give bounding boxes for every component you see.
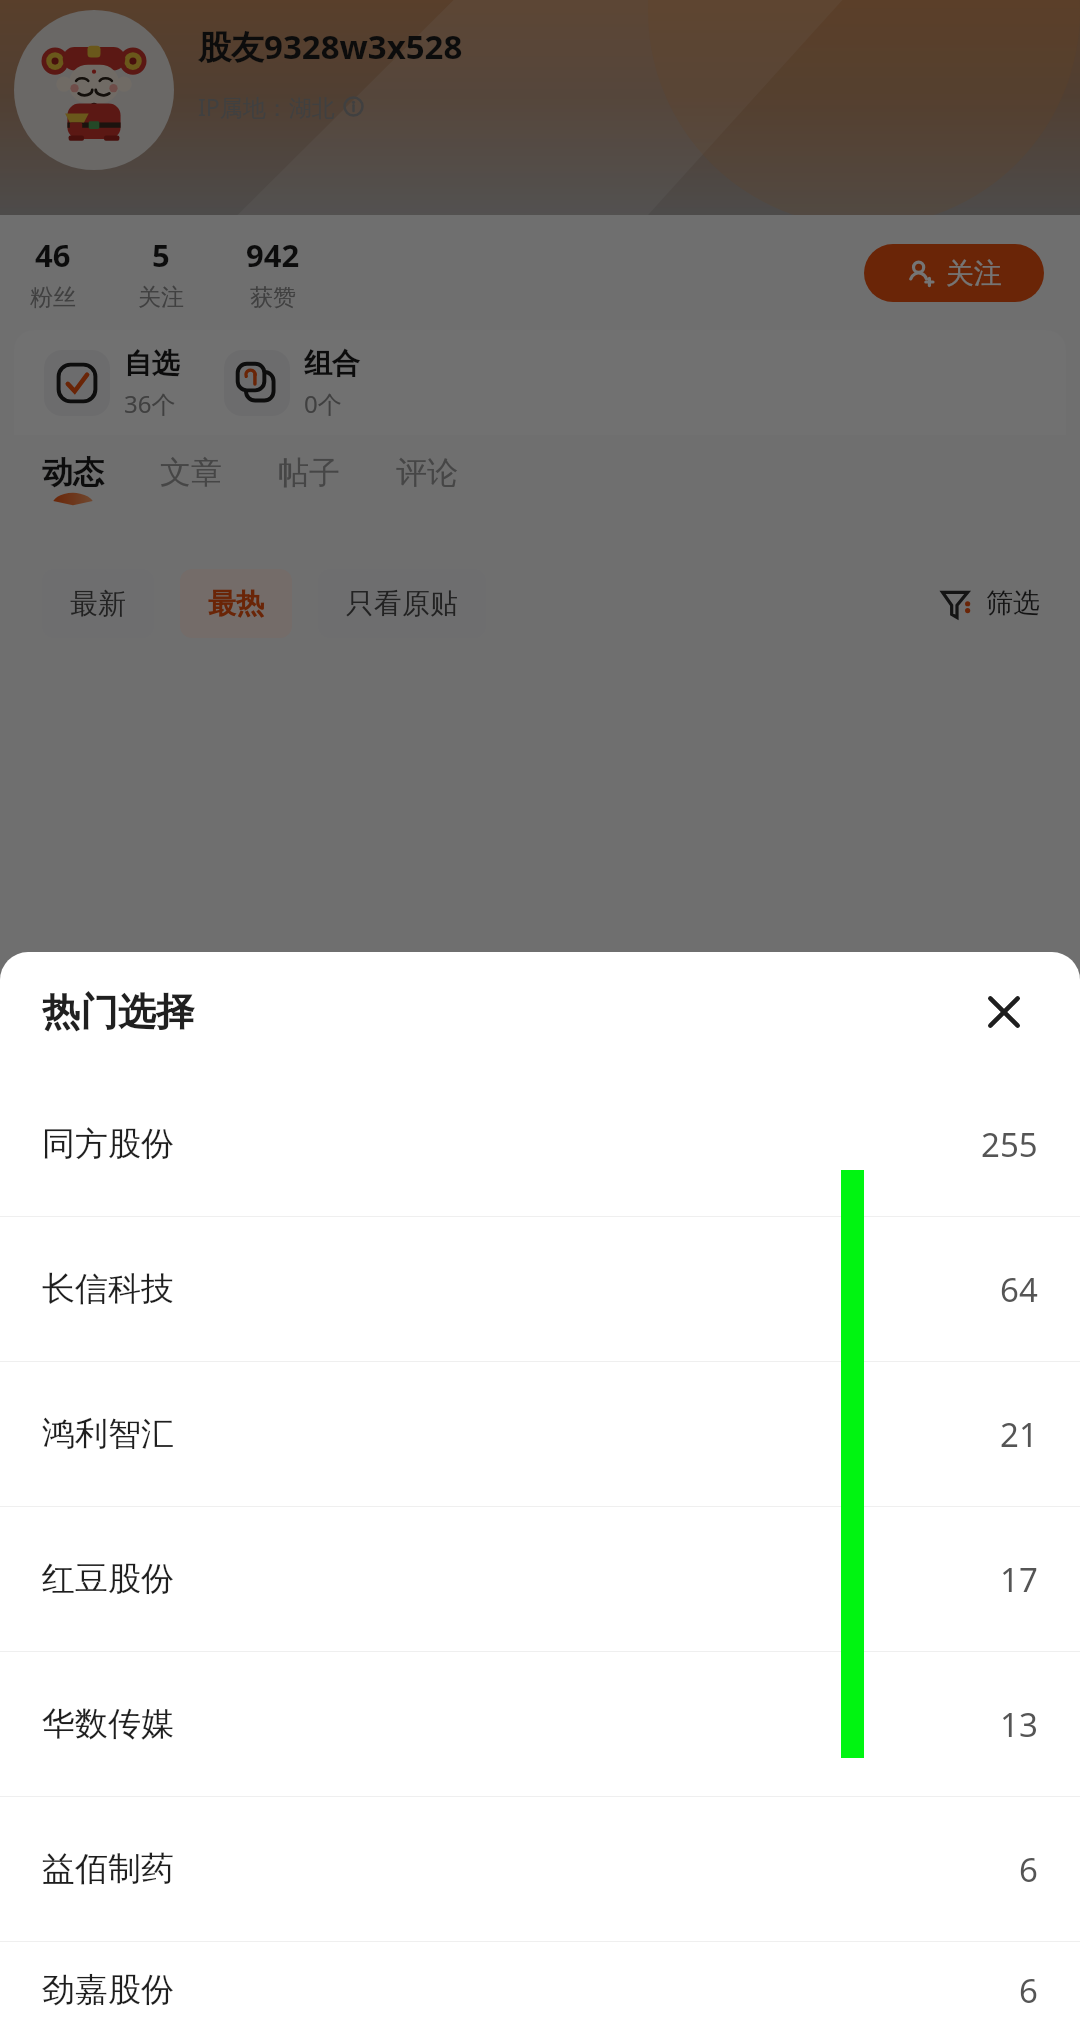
button[interactable] xyxy=(14,10,174,170)
staticText: 自选 xyxy=(124,346,180,381)
button[interactable]: 只看原贴 xyxy=(318,569,486,638)
button[interactable]: 5 xyxy=(138,234,184,312)
staticText: 46 xyxy=(35,234,71,276)
button[interactable]: 最热 xyxy=(180,569,292,638)
staticText: 17 xyxy=(1000,1557,1038,1602)
button[interactable]: 最新 xyxy=(42,569,154,638)
button[interactable]: 益佰制药 xyxy=(0,1797,1080,1941)
staticText: 益佰制药 xyxy=(42,1848,174,1890)
button[interactable]: 动态 xyxy=(42,453,104,515)
button[interactable]: 红豆股份 xyxy=(0,1507,1080,1651)
staticText: 6 xyxy=(1019,1847,1038,1892)
button[interactable]: 文章 xyxy=(160,453,222,492)
staticText: 13 xyxy=(1000,1702,1038,1747)
staticText: 64 xyxy=(1000,1267,1038,1312)
staticText: 255 xyxy=(981,1122,1038,1167)
button[interactable]: 帖子 xyxy=(278,453,340,492)
staticText: 粉丝 xyxy=(30,283,76,312)
staticText: 股友9328w3x528 xyxy=(198,24,463,69)
button[interactable]: 942 xyxy=(246,234,300,312)
staticText: 36个 xyxy=(124,387,176,420)
staticText: 关注 xyxy=(946,256,1002,291)
staticText: 鸿利智汇 xyxy=(42,1413,174,1455)
staticText: 帖子 xyxy=(278,453,340,492)
button[interactable]: 同方股份 xyxy=(0,1072,1080,1216)
staticText: 获赞 xyxy=(250,283,296,312)
staticText: 组合 xyxy=(304,346,360,381)
button[interactable]: 46 xyxy=(30,234,76,312)
staticText: 最热 xyxy=(208,586,264,621)
button[interactable]: 关注 xyxy=(864,244,1044,302)
button[interactable]: 筛选 xyxy=(938,584,1040,622)
staticText: 5 xyxy=(152,234,170,276)
button[interactable]: Close xyxy=(976,984,1032,1040)
staticText: 只看原贴 xyxy=(346,586,458,621)
staticText: 942 xyxy=(246,234,300,276)
button[interactable]: 劲嘉股份 xyxy=(0,1942,1080,2038)
staticText: 6 xyxy=(1019,1968,1038,2013)
button[interactable]: 华数传媒 xyxy=(0,1652,1080,1796)
staticText: 筛选 xyxy=(986,586,1040,620)
staticText: 劲嘉股份 xyxy=(42,1969,174,2011)
staticText: 关注 xyxy=(138,283,184,312)
staticText: 21 xyxy=(1000,1412,1038,1457)
staticText: 0个 xyxy=(304,387,342,420)
button[interactable]: 评论 xyxy=(396,453,458,492)
staticText: 热门选择 xyxy=(42,988,194,1036)
staticText: 长信科技 xyxy=(42,1268,174,1310)
button[interactable]: 鸿利智汇 xyxy=(0,1362,1080,1506)
staticText: 文章 xyxy=(160,453,222,492)
staticText: 华数传媒 xyxy=(42,1703,174,1745)
button[interactable]: 长信科技 xyxy=(0,1217,1080,1361)
staticText: 评论 xyxy=(396,453,458,492)
button[interactable]: 自选 xyxy=(44,346,180,420)
staticText: 最新 xyxy=(70,586,126,621)
staticText: 同方股份 xyxy=(42,1123,174,1165)
staticText: IP属地：湖北 xyxy=(198,91,335,122)
staticText: 动态 xyxy=(42,453,104,492)
button[interactable]: 组合 xyxy=(224,346,360,420)
staticText: 红豆股份 xyxy=(42,1558,174,1600)
